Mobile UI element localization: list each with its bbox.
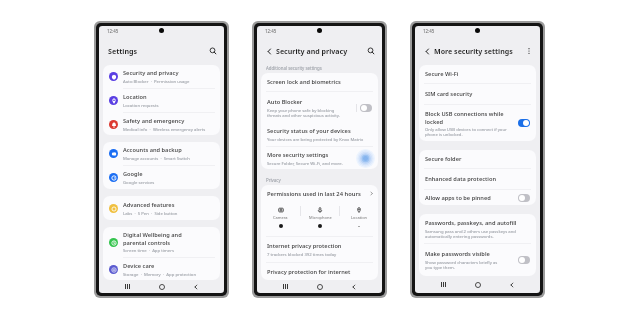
button[interactable]: Home [471, 278, 485, 291]
staticText: Auto Blocker · Permission usage [123, 78, 190, 84]
staticText: Location [123, 93, 147, 101]
button[interactable]: Recents [120, 280, 134, 293]
staticText: Enhanced data protection [425, 175, 496, 183]
button[interactable]: Safety and emergency [103, 113, 220, 135]
button[interactable]: Search [365, 45, 376, 56]
staticText: Show password characters briefly as you … [425, 259, 498, 270]
staticText: Privacy protection for internet [267, 268, 351, 276]
staticText: Security status of your devices [267, 127, 351, 135]
button[interactable]: Auto Blocker [261, 92, 378, 123]
button[interactable]: Toggle off [518, 194, 530, 202]
button[interactable]: Recents [278, 280, 292, 293]
staticText: Allow apps to be pinned [425, 194, 491, 202]
button[interactable]: Recents [436, 278, 450, 291]
staticText: Google [123, 170, 143, 178]
button[interactable]: Microphone [301, 202, 339, 236]
button[interactable]: Allow apps to be pinned [419, 190, 536, 205]
button[interactable]: Location [340, 202, 378, 236]
button[interactable]: Block USB connections while locked [419, 105, 536, 141]
staticText: Digital Wellbeing and parental controls [123, 231, 182, 246]
button[interactable]: Google [103, 166, 220, 189]
staticText: Medical info · Wireless emergency alerts [123, 126, 206, 132]
staticText: Labs · S Pen · Side button [123, 210, 178, 216]
staticText: Permissions used in last 24 hours [267, 190, 361, 198]
staticText: Camera [273, 215, 288, 220]
staticText: Storage · Memory · App protection [123, 271, 197, 277]
staticText: Make passwords visible [425, 250, 490, 258]
staticText: Privacy [266, 177, 281, 183]
button[interactable]: Permissions used in last 24 hours [261, 185, 378, 202]
button[interactable]: Back [505, 278, 519, 291]
staticText: Secure folder [425, 155, 462, 163]
button[interactable]: Advanced features [103, 196, 220, 220]
button[interactable]: Secure Wi-Fi [419, 65, 536, 83]
staticText: Passwords, passkeys, and autofill [425, 219, 517, 227]
button[interactable]: Accounts and backup [103, 142, 220, 165]
staticText: Settings [108, 46, 138, 56]
staticText: Internet privacy protection [267, 242, 342, 250]
staticText: Microphone [309, 215, 332, 220]
staticText: Security and privacy [123, 69, 179, 77]
staticText: Keep your phone safe by blocking threats… [267, 107, 340, 118]
staticText: Screen lock and biometrics [267, 78, 341, 86]
staticText: Auto Blocker [267, 98, 303, 106]
button[interactable]: Security and privacy [103, 65, 220, 88]
button[interactable]: Camera [261, 202, 300, 236]
staticText: 12:45 [423, 28, 435, 34]
staticText: More security settings [267, 151, 329, 159]
staticText: Secure Wi-Fi [425, 70, 459, 78]
button[interactable]: Search [207, 45, 218, 56]
button[interactable]: Back [422, 46, 432, 56]
button[interactable]: Toggle off [518, 256, 530, 264]
staticText: Screen time · App timers [123, 247, 174, 253]
button[interactable]: Home [155, 280, 169, 293]
button[interactable]: Back [264, 46, 274, 56]
button[interactable]: Digital Wellbeing and parental controls [103, 227, 220, 257]
button[interactable]: More options [523, 44, 534, 55]
button[interactable]: Location [103, 89, 220, 112]
staticText: 12:45 [265, 28, 277, 34]
button[interactable]: Screen lock and biometrics [261, 73, 378, 91]
staticText: Only allow USB devices to connect if you… [425, 126, 507, 137]
staticText: Device care [123, 262, 155, 270]
button[interactable]: Make passwords visible [419, 244, 536, 276]
button[interactable]: Device care [103, 258, 220, 280]
button[interactable]: Back [347, 280, 361, 293]
staticText: Security and privacy [276, 46, 348, 56]
button[interactable]: Security status of your devices [261, 123, 378, 146]
staticText: More security settings [434, 46, 513, 56]
staticText: Block USB connections while locked [425, 110, 504, 125]
button[interactable]: Home [313, 280, 327, 293]
staticText: Samsung pass and 2 others use passkeys a… [425, 228, 516, 239]
button[interactable]: SIM card security [419, 84, 536, 104]
button[interactable]: Secure folder [419, 150, 536, 168]
button[interactable]: Toggle on [518, 119, 530, 127]
button[interactable]: Enhanced data protection [419, 169, 536, 189]
button[interactable]: Privacy protection for internet [261, 263, 378, 280]
staticText: Manage accounts · Smart Switch [123, 155, 190, 161]
staticText: Location requests [123, 102, 159, 108]
staticText: Your devices are being protected by Knox… [267, 136, 364, 142]
staticText: Accounts and backup [123, 146, 182, 154]
staticText: Location [351, 215, 368, 220]
staticText: 12:45 [107, 28, 119, 34]
staticText: Google services [123, 179, 155, 185]
staticText: Advanced features [123, 201, 175, 209]
button[interactable]: Toggle off [360, 104, 372, 112]
button[interactable]: Back [189, 280, 203, 293]
staticText: 7 trackers blocked 392 times today [267, 251, 337, 257]
staticText: Safety and emergency [123, 117, 185, 125]
button[interactable]: Internet privacy protection [261, 237, 378, 262]
staticText: Secure Folder, Secure Wi-Fi, and more. [267, 160, 343, 166]
button[interactable]: More security settings [261, 147, 378, 169]
staticText: Additional security settings [266, 65, 322, 71]
staticText: SIM card security [425, 90, 473, 98]
button[interactable]: Passwords, passkeys, and autofill [419, 214, 536, 243]
